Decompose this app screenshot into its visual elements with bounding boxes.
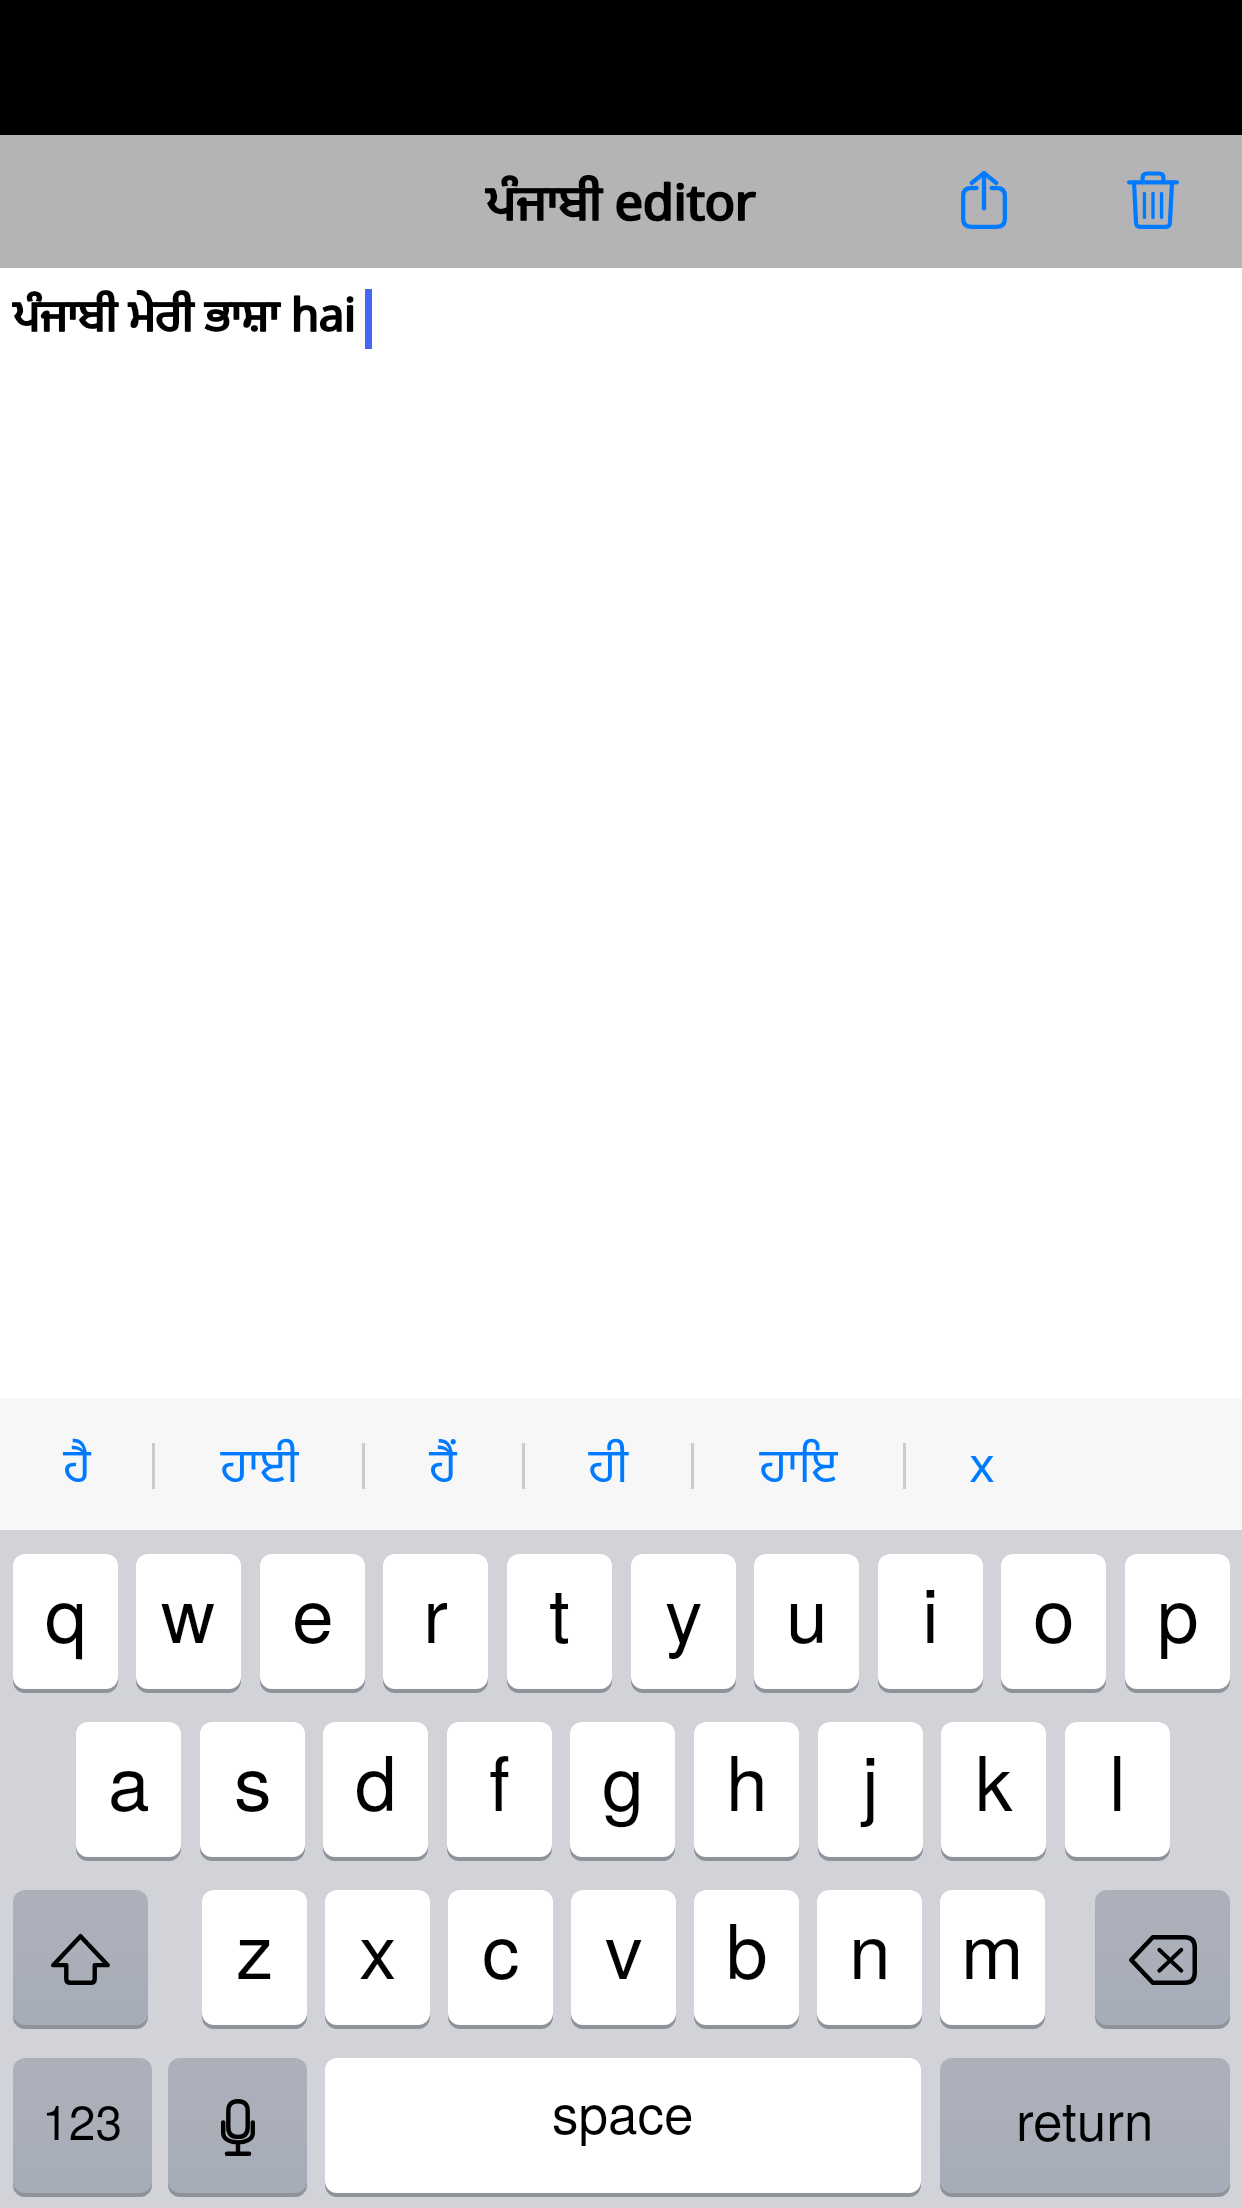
button[interactable]: b	[694, 1890, 799, 2025]
button[interactable]: x	[904, 1398, 1059, 1530]
staticText: r	[423, 1557, 448, 1664]
button[interactable]: q	[13, 1554, 118, 1689]
staticText: n	[849, 1893, 891, 2000]
staticText: a	[108, 1725, 150, 1832]
staticText: ਹੈਂ	[429, 1439, 457, 1502]
staticText: ਹੈ	[63, 1439, 91, 1502]
staticText: m	[961, 1893, 1024, 2000]
staticText: space	[552, 2073, 694, 2149]
button[interactable]: l	[1065, 1722, 1170, 1857]
staticText: j	[862, 1725, 879, 1832]
staticText: ਪੰਜਾਬੀ editor	[487, 175, 757, 240]
button[interactable]: s	[200, 1722, 305, 1857]
staticText: f	[489, 1725, 510, 1832]
button[interactable]: return	[940, 2058, 1230, 2193]
button[interactable]: e	[260, 1554, 365, 1689]
staticText: o	[1033, 1557, 1075, 1664]
button[interactable]: space	[325, 2058, 921, 2193]
staticText: p	[1157, 1557, 1199, 1664]
staticText: x	[359, 1893, 397, 2000]
button[interactable]: Text editor	[0, 268, 1242, 1398]
staticText: ਹੀ	[588, 1439, 629, 1502]
staticText: w	[161, 1557, 216, 1664]
button[interactable]: Backspace	[1095, 1890, 1230, 2025]
button[interactable]: ਹੈਂ	[363, 1398, 523, 1530]
staticText: 123	[42, 2085, 123, 2154]
staticText: v	[605, 1893, 643, 2000]
button[interactable]: h	[694, 1722, 799, 1857]
staticText: z	[236, 1893, 274, 2000]
button[interactable]: 123	[13, 2058, 152, 2193]
button[interactable]: w	[136, 1554, 241, 1689]
staticText: ਹਾਇ	[759, 1439, 838, 1502]
button[interactable]: x	[325, 1890, 430, 2025]
button[interactable]: Shift	[13, 1890, 148, 2025]
button[interactable]: t	[507, 1554, 612, 1689]
staticText: ਪੰਜਾਬੀ ਮੇਰੀ ਭਾਸ਼ਾ hai	[13, 291, 356, 350]
staticText: b	[726, 1893, 768, 2000]
staticText: i	[922, 1557, 939, 1664]
button[interactable]: a	[76, 1722, 181, 1857]
button[interactable]: r	[383, 1554, 488, 1689]
button[interactable]: m	[940, 1890, 1045, 2025]
staticText: x	[969, 1439, 995, 1502]
button[interactable]: o	[1001, 1554, 1106, 1689]
staticText: ਪੰਜਾਬੀ editor	[486, 175, 756, 240]
button[interactable]: z	[202, 1890, 307, 2025]
button[interactable]: ਹੀ	[523, 1398, 693, 1530]
button[interactable]: f	[447, 1722, 552, 1857]
button[interactable]: Delete	[1097, 144, 1209, 256]
staticText: s	[234, 1725, 272, 1832]
staticText: e	[292, 1557, 334, 1664]
button[interactable]: j	[818, 1722, 923, 1857]
staticText: d	[355, 1725, 397, 1832]
button[interactable]: d	[323, 1722, 428, 1857]
button[interactable]: ਹੈ	[0, 1398, 154, 1530]
button[interactable]: Dictation	[168, 2058, 307, 2193]
staticText: t	[549, 1557, 570, 1664]
button[interactable]: k	[941, 1722, 1046, 1857]
button[interactable]: Share	[928, 144, 1040, 256]
staticText: y	[665, 1557, 703, 1664]
staticText: k	[975, 1725, 1013, 1832]
staticText: h	[726, 1725, 768, 1832]
staticText: ਹਾਈ	[220, 1439, 299, 1502]
button[interactable]: u	[754, 1554, 859, 1689]
staticText: g	[602, 1725, 644, 1832]
button[interactable]: c	[448, 1890, 553, 2025]
button[interactable]: ਹਾਇ	[693, 1398, 904, 1530]
button[interactable]: p	[1125, 1554, 1230, 1689]
staticText: u	[786, 1557, 828, 1664]
button[interactable]: i	[878, 1554, 983, 1689]
button[interactable]: g	[570, 1722, 675, 1857]
staticText: ਪੰਜਾਬੀ ਮੇਰੀ ਭਾਸ਼ਾ hai	[14, 291, 357, 350]
staticText: c	[482, 1893, 520, 2000]
staticText: return	[1016, 2080, 1154, 2156]
staticText: l	[1109, 1725, 1126, 1832]
button[interactable]: ਹਾਈ	[154, 1398, 364, 1530]
staticText: q	[45, 1557, 87, 1664]
button[interactable]: n	[817, 1890, 922, 2025]
button[interactable]: v	[571, 1890, 676, 2025]
button[interactable]: y	[631, 1554, 736, 1689]
